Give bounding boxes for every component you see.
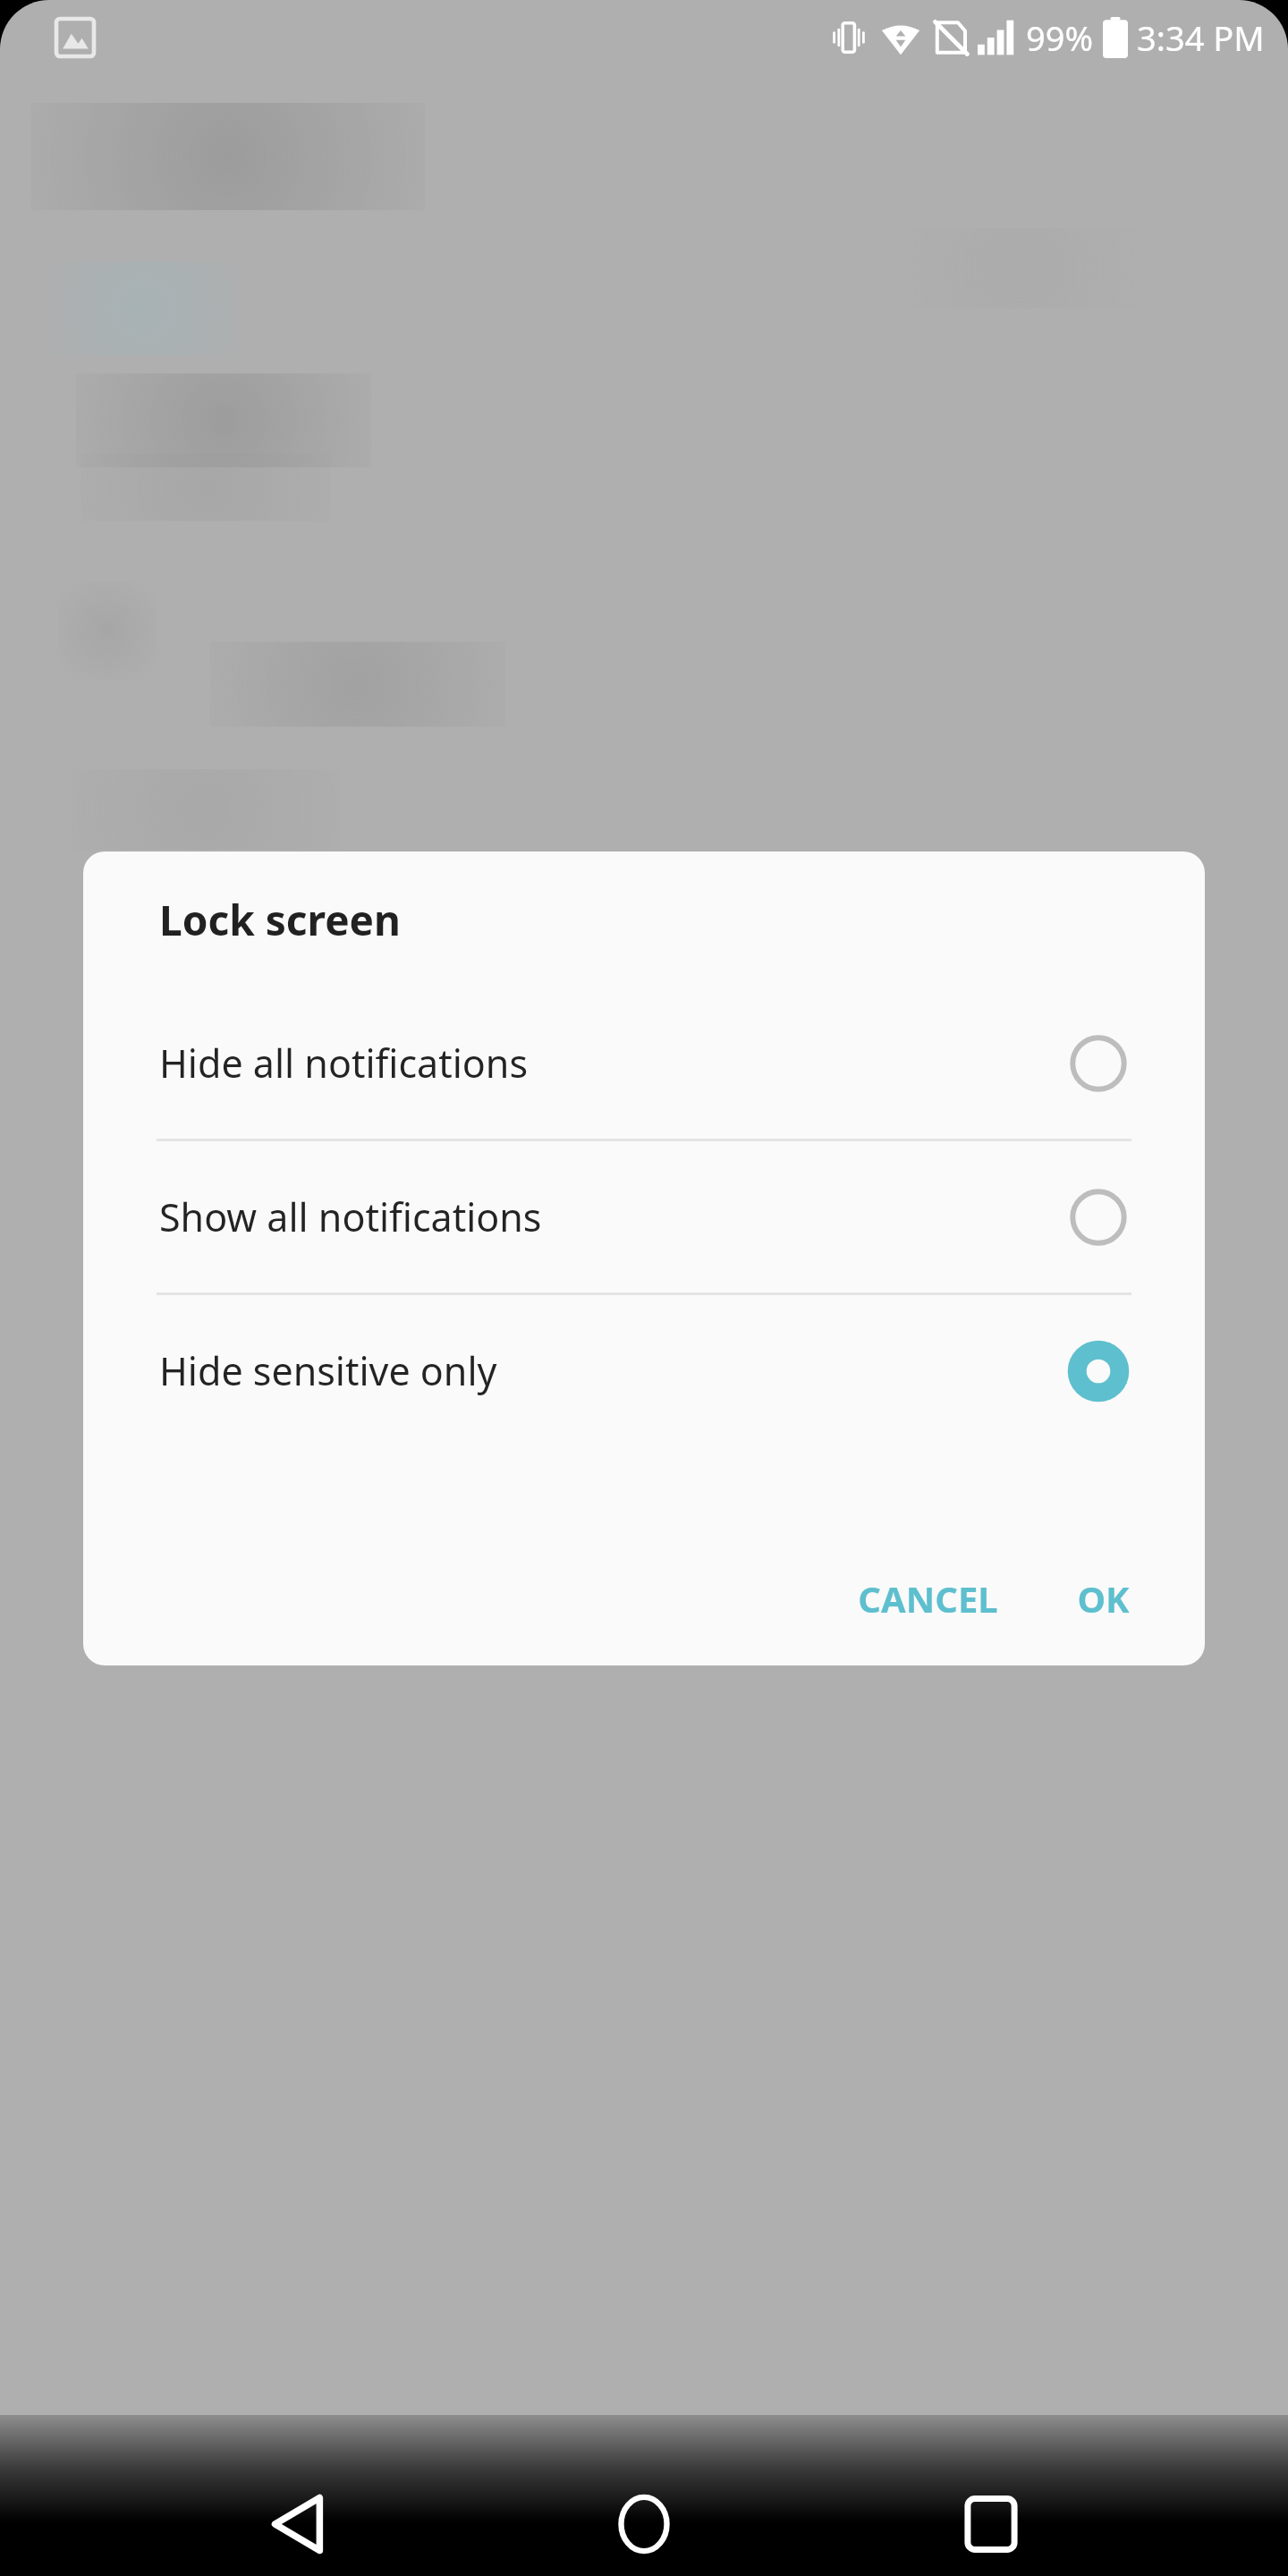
- button[interactable]: Show all notifications: [83, 1141, 1205, 1292]
- button[interactable]: Back: [249, 2479, 347, 2569]
- staticText: Lock screen: [159, 892, 401, 948]
- staticText: Show all notifications: [159, 1191, 1064, 1243]
- staticText: 3:34 PM: [1137, 14, 1265, 61]
- staticText: OK: [1077, 1574, 1130, 1623]
- button[interactable]: Home: [595, 2479, 693, 2569]
- button[interactable]: Recent apps: [942, 2479, 1040, 2569]
- staticText: CANCEL: [858, 1574, 998, 1623]
- button[interactable]: OK: [1061, 1555, 1146, 1642]
- staticText: 99%: [1026, 14, 1094, 61]
- button[interactable]: Hide all notifications: [83, 987, 1205, 1139]
- staticText: Hide all notifications: [159, 1037, 1064, 1089]
- button[interactable]: Hide sensitive only: [83, 1295, 1205, 1446]
- staticText: Hide sensitive only: [159, 1344, 1064, 1397]
- button[interactable]: CANCEL: [842, 1555, 1014, 1642]
